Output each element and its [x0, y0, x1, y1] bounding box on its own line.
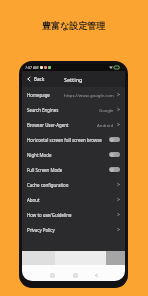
staticText: Search Engines — [27, 107, 59, 113]
button[interactable]: Recents — [47, 270, 57, 280]
button[interactable]: Back — [22, 71, 49, 87]
staticText: Back — [34, 76, 45, 82]
button[interactable]: Full Screen Mode — [22, 162, 125, 177]
staticText: About — [27, 197, 40, 203]
staticText: How to use/Guideline — [27, 212, 72, 218]
staticText: Browser User-Agent — [27, 122, 69, 128]
button[interactable]: About — [22, 192, 125, 207]
button[interactable]: Home — [70, 270, 80, 280]
staticText: 7:07 AM — [25, 65, 39, 70]
staticText: Android — [97, 122, 114, 128]
button[interactable]: Browser User-Agent — [22, 117, 125, 132]
staticText: Horizontal screen full screen browse — [27, 137, 102, 143]
button[interactable]: Search Engines — [22, 102, 125, 117]
staticText: Setting — [64, 76, 83, 83]
button[interactable]: Cache configuration — [22, 177, 125, 192]
staticText: Full Screen Mode — [27, 167, 63, 173]
staticText: Cache configuration — [27, 182, 69, 188]
staticText: https://www.google.com — [64, 92, 114, 98]
button[interactable]: Back — [91, 270, 101, 280]
staticText: 豊富な設定管理 — [42, 20, 106, 31]
staticText: Google — [99, 107, 114, 113]
staticText: Night Mode — [27, 152, 52, 158]
button[interactable]: How to use/Guideline — [22, 207, 125, 222]
staticText: Homepage — [27, 92, 50, 98]
button[interactable]: Homepage — [22, 87, 125, 102]
staticText: Privacy Policy — [27, 227, 55, 233]
button[interactable]: Horizontal screen full screen browse — [22, 132, 125, 147]
button[interactable]: Night Mode — [22, 147, 125, 162]
button[interactable]: Privacy Policy — [22, 222, 125, 237]
